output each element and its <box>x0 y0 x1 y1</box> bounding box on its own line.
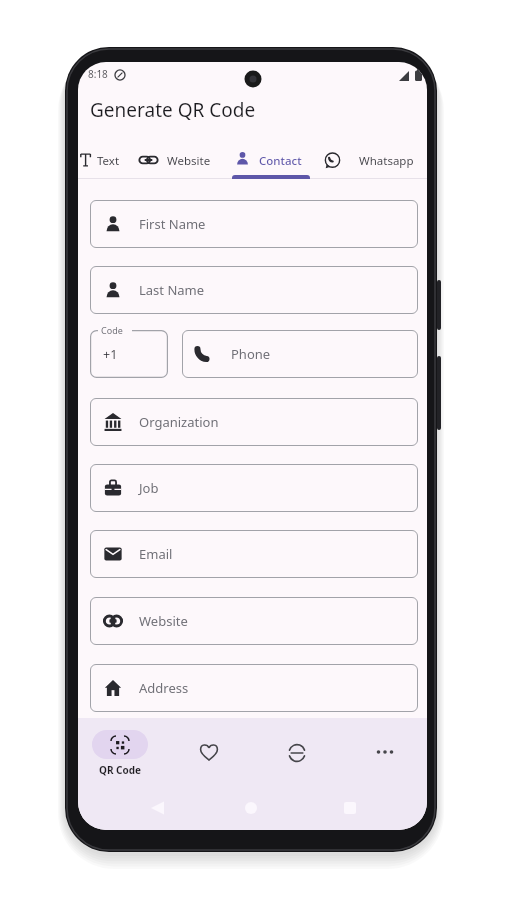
staticText: Contact <box>259 153 302 169</box>
staticText: Address <box>139 679 189 697</box>
staticText: +1 <box>103 346 118 363</box>
staticText: Email <box>139 545 173 563</box>
staticText: Phone <box>231 345 271 363</box>
staticText: Job <box>139 479 159 497</box>
staticText: Text <box>97 153 120 169</box>
staticText: Website <box>167 153 211 169</box>
staticText: Last Name <box>139 281 205 299</box>
staticText: QR Code <box>99 763 142 777</box>
staticText: Generate QR Code <box>90 97 256 123</box>
staticText: Code <box>101 324 123 336</box>
staticText: Organization <box>139 413 219 431</box>
staticText: 8:18 <box>88 67 108 81</box>
staticText: First Name <box>139 215 206 233</box>
staticText: Website <box>139 612 188 630</box>
staticText: Whatsapp <box>359 153 414 169</box>
